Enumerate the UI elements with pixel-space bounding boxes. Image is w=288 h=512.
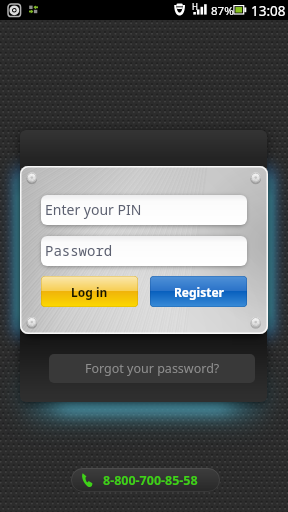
staticText: 87% — [211, 3, 234, 19]
button[interactable]: Password — [41, 236, 247, 266]
staticText: 8-800-700-85-58 — [103, 472, 198, 489]
staticText: Log in — [71, 284, 108, 300]
button[interactable]: Register — [150, 276, 247, 307]
staticText: Register — [174, 284, 224, 300]
staticText: 13:08 — [251, 2, 286, 20]
staticText: H — [192, 1, 198, 12]
button[interactable]: Forgot your password? — [49, 354, 255, 383]
staticText: Password — [45, 241, 113, 260]
button[interactable]: Enter your PIN — [41, 195, 247, 225]
button[interactable]: Log in — [41, 276, 138, 307]
staticText: Enter your PIN — [45, 200, 142, 219]
staticText: Forgot your password? — [85, 360, 220, 377]
button[interactable]: 8-800-700-85-58 — [71, 468, 220, 492]
